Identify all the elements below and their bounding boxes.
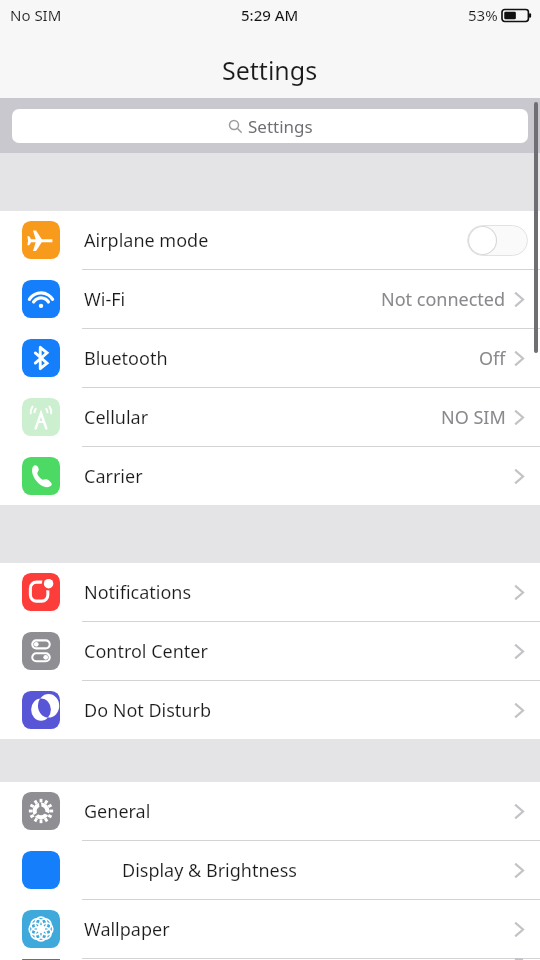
button[interactable]: Wi-Fi <box>0 270 540 329</box>
button[interactable]: General <box>0 782 540 841</box>
staticText: Airplane mode <box>84 228 467 253</box>
staticText: Control Center <box>84 639 514 664</box>
staticText: Cellular <box>84 405 441 430</box>
staticText: No SIM <box>10 5 62 25</box>
staticText: 53% <box>468 5 498 25</box>
staticText: Settings <box>222 53 318 87</box>
button[interactable]: Notifications <box>0 563 540 622</box>
staticText: Wi-Fi <box>84 287 381 312</box>
staticText: Notifications <box>84 580 514 605</box>
button[interactable]: Bluetooth <box>0 329 540 388</box>
staticText: General <box>84 799 514 824</box>
staticText: Do Not Disturb <box>84 698 514 723</box>
staticText: Off <box>479 346 506 371</box>
button[interactable]: Search Settings <box>12 109 528 143</box>
staticText: Wallpaper <box>84 917 514 942</box>
button[interactable]: Airplane mode <box>0 211 540 270</box>
button[interactable]: Airplane mode off <box>467 225 528 256</box>
staticText: Not connected <box>381 287 506 312</box>
staticText: NO SIM <box>441 405 506 430</box>
staticText: Settings <box>248 115 313 138</box>
staticText: Display & Brightness <box>122 858 514 883</box>
button[interactable]: Wallpaper <box>0 900 540 959</box>
button[interactable]: Carrier <box>0 447 540 505</box>
button[interactable]: Do Not Disturb <box>0 681 540 739</box>
staticText: Bluetooth <box>84 346 479 371</box>
button[interactable]: Sounds & Haptics <box>0 959 540 960</box>
button[interactable]: A <box>0 841 540 900</box>
staticText: Carrier <box>84 464 514 489</box>
staticText: 5:29 AM <box>241 5 299 25</box>
button[interactable]: Cellular <box>0 388 540 447</box>
button[interactable]: Control Center <box>0 622 540 681</box>
